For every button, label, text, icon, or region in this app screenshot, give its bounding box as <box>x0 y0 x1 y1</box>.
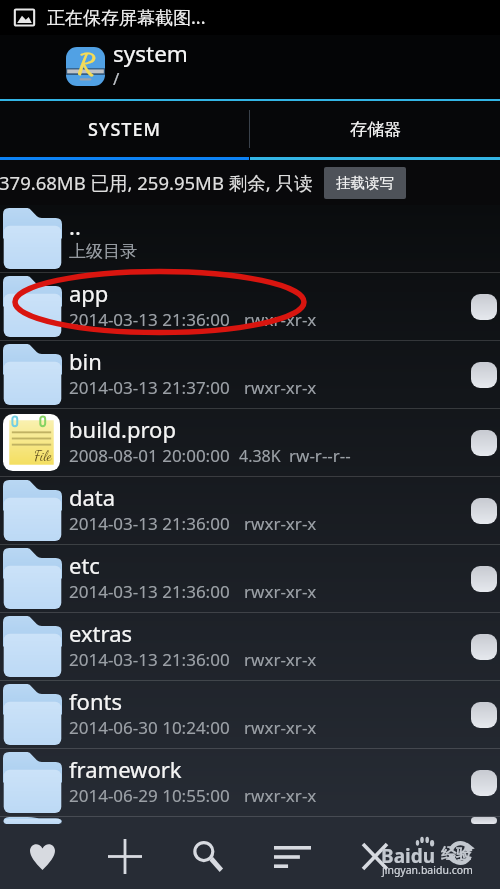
staticText: rwxr-xr-x <box>244 716 317 739</box>
staticText: 正在保存屏幕截图... <box>47 5 206 30</box>
staticText: 存储器 <box>350 119 401 140</box>
staticText: rwxr-xr-x <box>244 308 317 331</box>
staticText: 上级目录 <box>69 241 137 262</box>
button[interactable]: SYSTEM <box>0 101 249 157</box>
button[interactable]: Search <box>166 824 250 889</box>
button[interactable]: Select fonts <box>471 702 497 728</box>
button[interactable]: Select etc <box>471 566 497 592</box>
staticText: system <box>113 38 188 69</box>
button[interactable]: framework <box>0 749 500 817</box>
staticText: fonts <box>69 686 122 716</box>
staticText: rwxr-xr-x <box>244 784 317 807</box>
staticText: Baidu <box>381 843 436 869</box>
button[interactable]: fonts <box>0 681 500 749</box>
staticText: rw-r--r-- <box>289 444 351 467</box>
staticText: 2014-06-30 10:24:00 <box>69 716 230 739</box>
staticText: 2014-03-13 21:36:00 <box>69 648 230 671</box>
staticText: 2014-03-13 21:36:00 <box>69 580 230 603</box>
staticText: 2014-03-13 21:37:00 <box>69 376 230 399</box>
staticText: R <box>78 47 95 81</box>
button[interactable]: 存储器 <box>250 101 500 157</box>
staticText: 经验 <box>441 845 471 864</box>
staticText: .. <box>69 211 81 241</box>
staticText: framework <box>69 754 182 784</box>
staticText: rwxr-xr-x <box>244 376 317 399</box>
staticText: app <box>69 278 109 308</box>
staticText: etc <box>69 550 100 580</box>
button[interactable]: Bookmarks <box>0 824 84 889</box>
staticText: jingyan.baidu.com <box>382 863 473 877</box>
button[interactable]: app <box>0 273 500 341</box>
staticText: 2008-08-01 20:00:00 <box>69 444 230 467</box>
staticText: data <box>69 482 116 512</box>
staticText: 4.38K <box>239 445 281 467</box>
button[interactable]: Select extras <box>471 634 497 660</box>
button[interactable]: etc <box>0 545 500 613</box>
button[interactable]: Sort <box>250 824 334 889</box>
staticText: lib <box>69 815 94 822</box>
staticText: 2014-03-13 21:36:00 <box>69 512 230 535</box>
button[interactable]: .. <box>0 205 500 273</box>
staticText: extras <box>69 618 133 648</box>
button[interactable]: Select bin <box>471 362 497 388</box>
button[interactable]: Select data <box>471 498 497 524</box>
staticText: / <box>113 67 120 90</box>
button[interactable]: lib <box>0 817 500 824</box>
button[interactable]: 挂载读写 <box>324 167 406 199</box>
button[interactable]: data <box>0 477 500 545</box>
staticText: 挂载读写 <box>336 174 394 192</box>
button[interactable]: Select app <box>471 294 497 320</box>
button[interactable]: Select framework <box>471 770 497 796</box>
staticText: build.prop <box>69 414 176 444</box>
button[interactable]: bin <box>0 341 500 409</box>
button[interactable]: Close <box>333 824 417 889</box>
button[interactable]: Select lib <box>471 817 497 824</box>
button[interactable]: extras <box>0 613 500 681</box>
button[interactable]: File <box>0 409 500 477</box>
button[interactable]: Select build.prop <box>471 430 497 456</box>
staticText: bin <box>69 346 102 376</box>
staticText: 2014-03-13 21:36:00 <box>69 308 230 331</box>
staticText: rwxr-xr-x <box>244 580 317 603</box>
staticText: 379.68MB 已用, 259.95MB 剩余, 只读 <box>0 170 313 195</box>
button[interactable]: New <box>83 824 167 889</box>
staticText: File <box>34 447 52 464</box>
staticText: 2014-06-29 10:55:00 <box>69 784 230 807</box>
staticText: rwxr-xr-x <box>244 512 317 535</box>
staticText: SYSTEM <box>88 117 161 142</box>
staticText: rwxr-xr-x <box>244 648 317 671</box>
